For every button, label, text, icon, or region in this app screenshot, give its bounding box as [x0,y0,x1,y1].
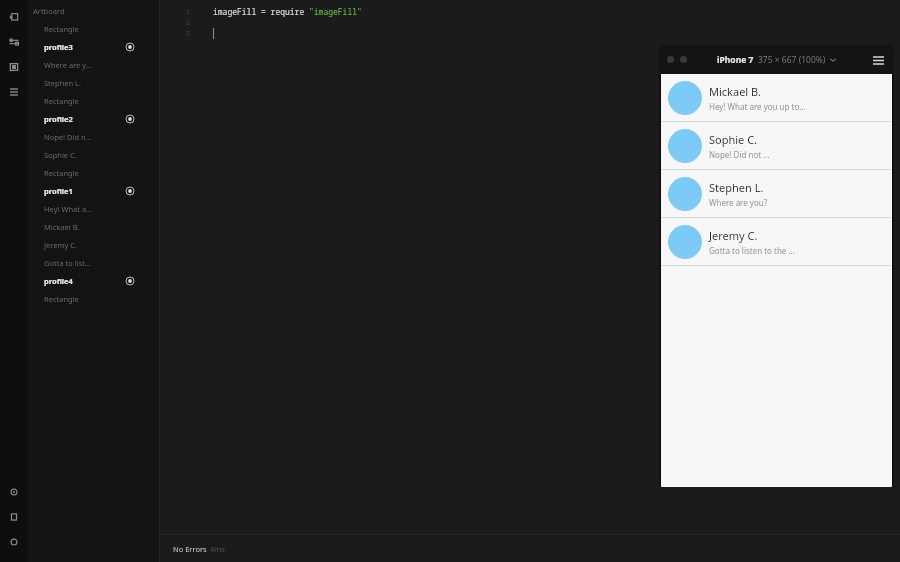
button[interactable]: profile4 [28,272,160,290]
staticText: Nope! Did not ... [709,149,770,160]
button[interactable]: Rectangle [28,92,160,110]
button[interactable]: Menu [870,52,886,68]
staticText: Mickael B. [44,222,80,232]
staticText: No Errors [173,544,207,554]
button[interactable]: Account [0,529,28,554]
button[interactable]: Nope! Did not ... [28,128,160,146]
button[interactable]: Sophie C. [28,146,160,164]
button[interactable]: Close [667,56,674,63]
button[interactable]: Hey! What are you up to... [28,200,160,218]
button[interactable]: Jeremy C. [28,236,160,254]
staticText: Hey! What are you up to... [44,204,93,214]
button[interactable]: Toggle profile4 [123,274,137,288]
staticText: Sophie C. [709,132,758,147]
staticText: 375 × 667 (100%) [758,54,826,66]
button[interactable]: Sophie C. [661,122,892,170]
button[interactable]: Stephen L. [661,170,892,218]
staticText: Rectangle [44,24,79,34]
staticText: profile3 [44,42,73,52]
button[interactable]: Assets [0,54,28,79]
staticText: Artboard [33,6,65,16]
button[interactable]: Minimize [680,56,687,63]
button[interactable]: Jeremy C. [661,218,892,266]
button[interactable]: Rectangle [28,290,160,308]
staticText: "imageFill" [309,6,362,17]
staticText: iPhone 7 [717,54,754,66]
staticText: 1 [186,7,190,16]
staticText: Rectangle [44,168,79,178]
button[interactable]: Mickael B. [661,74,892,122]
button[interactable]: Devices [0,504,28,529]
button[interactable]: Where are you? [28,56,160,74]
button[interactable]: Artboard [28,2,160,20]
staticText: profile2 [44,114,73,124]
button[interactable]: iPhone 7 [717,54,836,66]
button[interactable]: profile3 [28,38,160,56]
staticText: Rectangle [44,294,79,304]
button[interactable]: Rectangle [28,164,160,182]
staticText: 2 [186,18,190,27]
button[interactable]: Stephen L. [28,74,160,92]
button[interactable]: Gotta to listen to the ... [28,254,160,272]
button[interactable]: Toggle profile3 [123,40,137,54]
staticText: Mickael B. [709,84,762,99]
staticText: Gotta to listen to the ... [44,258,93,268]
button[interactable]: Toggle profile1 [123,184,137,198]
staticText: imageFill = require [213,6,309,17]
staticText: Hey! What are you up to... [709,101,806,112]
staticText: Rectangle [44,96,79,106]
staticText: Sophie C. [44,150,77,160]
button[interactable]: Mickael B. [28,218,160,236]
button[interactable]: Help [0,479,28,504]
staticText: Nope! Did not ... [44,132,93,142]
staticText: Where are you? [709,197,768,208]
button[interactable]: profile2 [28,110,160,128]
staticText: 4ms [210,544,225,554]
staticText: Stephen L. [44,78,82,88]
staticText: Gotta to listen to the ... [709,245,795,256]
button[interactable]: Artboards [0,4,28,29]
staticText: profile4 [44,276,73,286]
button[interactable]: Menu [0,79,28,104]
button[interactable]: Rectangle [28,20,160,38]
staticText: profile1 [44,186,73,196]
button[interactable]: Properties [0,29,28,54]
staticText: Jeremy C. [709,228,758,243]
staticText: Stephen L. [709,180,764,195]
button[interactable]: Toggle profile2 [123,112,137,126]
button[interactable]: profile1 [28,182,160,200]
staticText: 3 [186,29,190,38]
staticText: Where are you? [44,60,93,70]
staticText: Jeremy C. [44,240,77,250]
